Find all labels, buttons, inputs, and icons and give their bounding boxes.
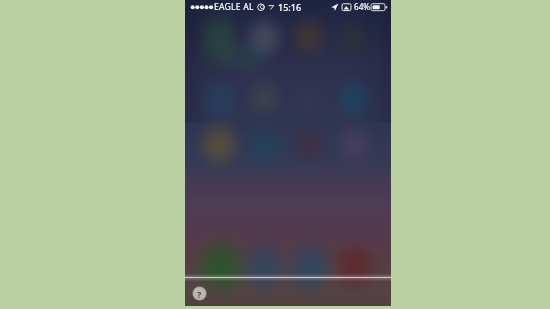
staticText: 64% bbox=[354, 1, 371, 12]
staticText: ? bbox=[197, 288, 202, 300]
staticText: 15:16 bbox=[278, 1, 302, 13]
button[interactable]: Help bbox=[192, 286, 207, 301]
staticText: EAGLE AL bbox=[214, 1, 254, 13]
